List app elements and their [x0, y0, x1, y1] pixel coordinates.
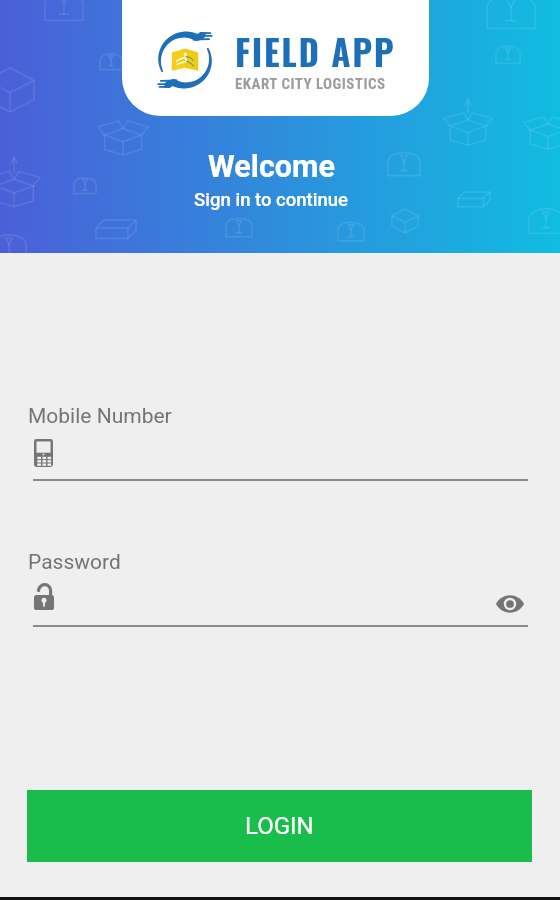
- button[interactable]: LOGIN: [27, 790, 532, 862]
- staticText: Welcome: [208, 149, 335, 185]
- button[interactable]: Password field: [28, 578, 468, 626]
- staticText: Sign in to continue: [194, 189, 348, 211]
- button[interactable]: Show password: [488, 582, 532, 626]
- staticText: LOGIN: [245, 812, 314, 840]
- staticText: Password: [28, 550, 121, 575]
- button[interactable]: Mobile Number field: [28, 434, 532, 484]
- staticText: FIELD APP: [235, 25, 396, 77]
- staticText: Mobile Number: [28, 404, 172, 429]
- staticText: EKART CITY LOGISTICS: [235, 75, 386, 93]
